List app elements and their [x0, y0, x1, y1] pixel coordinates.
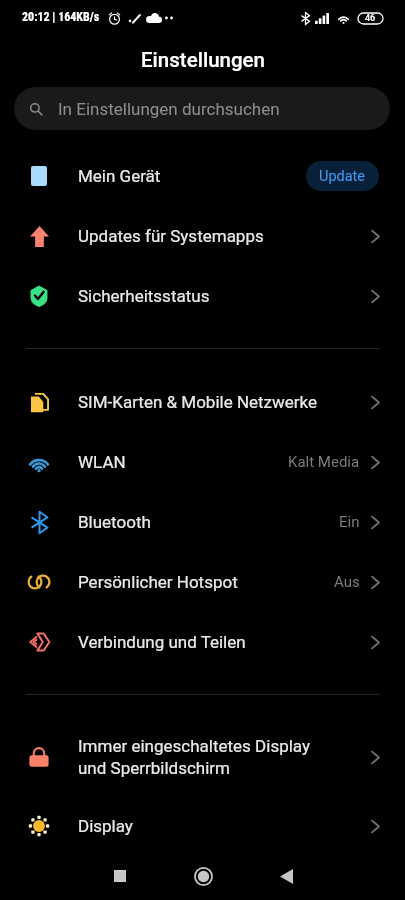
staticText: Sicherheitsstatus — [78, 286, 210, 306]
staticText: In Einstellungen durchsuchen — [58, 99, 280, 119]
button[interactable]: Recent apps — [99, 855, 141, 897]
staticText: Immer eingeschaltetes Display — [78, 736, 310, 756]
staticText: Verbindung und Teilen — [78, 632, 246, 652]
staticText: WLAN — [78, 452, 126, 472]
button[interactable]: Immer eingeschaltetes Display — [0, 718, 405, 796]
button[interactable]: Persönlicher Hotspot — [0, 552, 405, 612]
button[interactable]: WLAN — [0, 432, 405, 492]
button[interactable]: Sicherheitsstatus — [0, 266, 405, 326]
button[interactable]: Updates für Systemapps — [0, 206, 405, 266]
button[interactable]: Home — [182, 855, 224, 897]
staticText: Einstellungen — [141, 48, 265, 72]
staticText: 46 — [365, 13, 376, 24]
staticText: Kalt Media — [288, 453, 360, 471]
button[interactable]: Back — [265, 855, 307, 897]
staticText: Persönlicher Hotspot — [78, 572, 238, 592]
staticText: Updates für Systemapps — [78, 226, 264, 246]
staticText: und Sperrbildschirm — [78, 758, 230, 778]
button[interactable]: Display — [0, 796, 405, 856]
button[interactable]: In Einstellungen durchsuchen — [14, 87, 390, 130]
button[interactable]: Mein Gerät — [0, 146, 405, 206]
staticText: SIM-Karten & Mobile Netzwerke — [78, 392, 318, 412]
staticText: Ein — [339, 513, 360, 531]
staticText: Bluetooth — [78, 512, 151, 532]
staticText: Display — [78, 816, 133, 836]
staticText: Aus — [334, 573, 360, 591]
staticText: Update — [319, 168, 366, 185]
button[interactable]: Verbindung und Teilen — [0, 612, 405, 672]
button[interactable]: Update — [306, 161, 379, 191]
staticText: Mein Gerät — [78, 166, 306, 186]
button[interactable]: SIM-Karten & Mobile Netzwerke — [0, 372, 405, 432]
staticText: 20:12 | 164KB/s — [22, 10, 100, 24]
button[interactable]: Bluetooth — [0, 492, 405, 552]
